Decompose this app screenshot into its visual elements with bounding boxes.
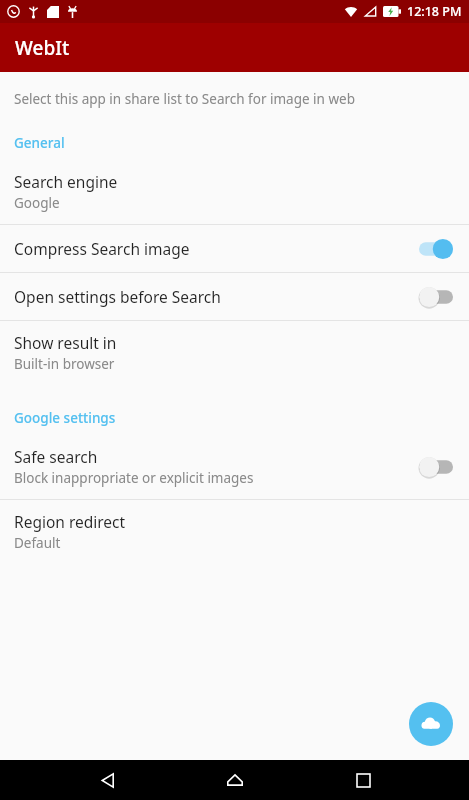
staticText: Safe search bbox=[14, 446, 98, 467]
button[interactable]: Show result in bbox=[0, 321, 469, 385]
staticText: Block inappropriate or explicit images bbox=[14, 469, 254, 487]
button[interactable]: Home bbox=[213, 760, 257, 800]
staticText: Show result in bbox=[14, 332, 117, 353]
staticText: Open settings before Search bbox=[14, 286, 419, 307]
staticText: Compress Search image bbox=[14, 238, 419, 259]
button[interactable]: Recent apps bbox=[341, 760, 385, 800]
button[interactable]: Region redirect bbox=[0, 500, 469, 564]
button[interactable]: Back bbox=[85, 760, 129, 800]
button[interactable]: Upload bbox=[409, 702, 453, 746]
button[interactable]: Compress Search image bbox=[0, 225, 469, 272]
button[interactable]: Off bbox=[419, 286, 453, 308]
staticText: Google bbox=[14, 194, 60, 212]
button[interactable]: On bbox=[419, 238, 453, 260]
button[interactable]: Search engine bbox=[0, 160, 469, 224]
staticText: 12:18 PM bbox=[407, 3, 462, 20]
staticText: Default bbox=[14, 534, 61, 552]
staticText: Region redirect bbox=[14, 511, 126, 532]
staticText: Google settings bbox=[14, 409, 116, 427]
staticText: WebIt bbox=[15, 35, 70, 61]
staticText: Built-in browser bbox=[14, 355, 115, 373]
staticText: Select this app in share list to Search … bbox=[14, 90, 355, 108]
button[interactable]: Safe search bbox=[0, 435, 469, 499]
staticText: General bbox=[14, 134, 65, 152]
staticText: Search engine bbox=[14, 171, 118, 192]
button[interactable]: Off bbox=[419, 456, 453, 478]
button[interactable]: Open settings before Search bbox=[0, 273, 469, 320]
